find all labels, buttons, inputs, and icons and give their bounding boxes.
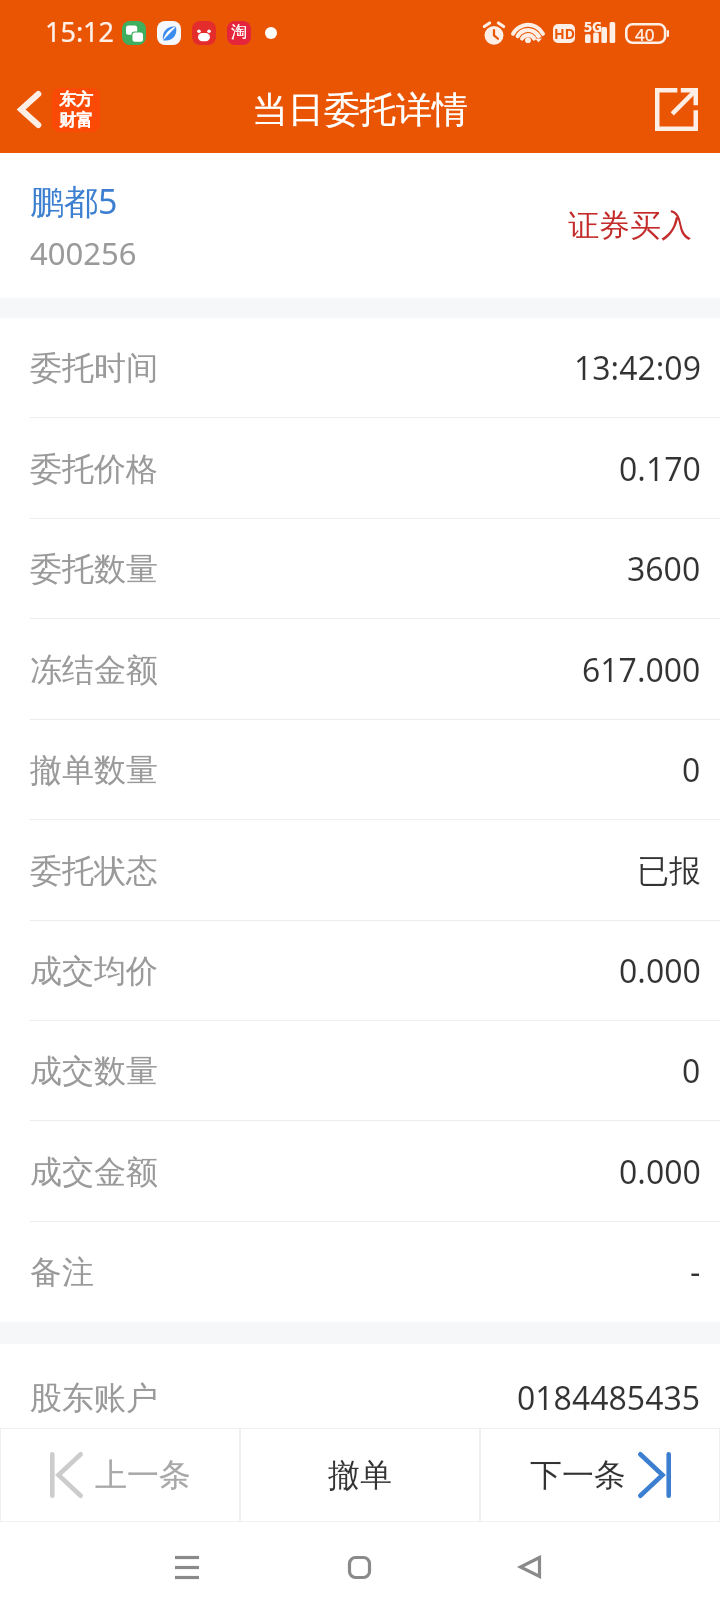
staticText: 0.000 [619, 1150, 701, 1194]
staticText: 0 [682, 1049, 701, 1093]
staticText: 股东账户 [30, 1378, 158, 1418]
button[interactable]: 东方财富 [52, 88, 100, 132]
staticText: 下一条 [530, 1455, 626, 1495]
staticText: - [690, 1250, 701, 1294]
staticText: 备注 [30, 1252, 94, 1292]
button[interactable]: Recents [151, 1531, 223, 1603]
button[interactable]: Share [641, 74, 720, 145]
staticText: 东方 [59, 89, 93, 110]
staticText: 委托数量 [30, 549, 158, 589]
staticText: 淘 [231, 22, 247, 42]
staticText: 13:42:09 [574, 346, 701, 390]
staticText: 当日委托详情 [252, 87, 468, 132]
staticText: 40 [635, 23, 655, 44]
staticText: 0.170 [619, 447, 701, 491]
staticText: 已报 [637, 851, 701, 891]
button[interactable]: 下一条 [480, 1428, 720, 1522]
button[interactable]: Back [0, 78, 49, 141]
staticText: 3600 [627, 547, 701, 591]
button[interactable]: 上一条 [0, 1428, 240, 1522]
staticText: 0 [682, 748, 701, 792]
staticText: 财富 [59, 110, 93, 131]
staticText: 上一条 [95, 1455, 191, 1495]
button[interactable]: 撤单 [240, 1428, 480, 1522]
staticText: 撤单 [328, 1455, 392, 1495]
staticText: 5G [584, 17, 603, 36]
staticText: 0.000 [619, 949, 701, 993]
button[interactable]: Back [494, 1531, 566, 1603]
staticText: HD [554, 24, 575, 43]
staticText: 0184485435 [517, 1376, 701, 1420]
staticText: 委托价格 [30, 449, 158, 489]
staticText: 成交数量 [30, 1051, 158, 1091]
staticText: 成交均价 [30, 951, 158, 991]
staticText: 证券买入 [568, 206, 692, 245]
staticText: 617.000 [582, 648, 701, 692]
staticText: 委托状态 [30, 851, 158, 891]
staticText: 冻结金额 [30, 650, 158, 690]
staticText: 400256 [30, 232, 137, 274]
staticText: 委托时间 [30, 348, 158, 388]
staticText: 鹏都5 [30, 178, 118, 224]
button[interactable]: Home [323, 1531, 395, 1603]
staticText: 成交金额 [30, 1152, 158, 1192]
staticText: 撤单数量 [30, 750, 158, 790]
staticText: 15:12 [45, 13, 115, 50]
